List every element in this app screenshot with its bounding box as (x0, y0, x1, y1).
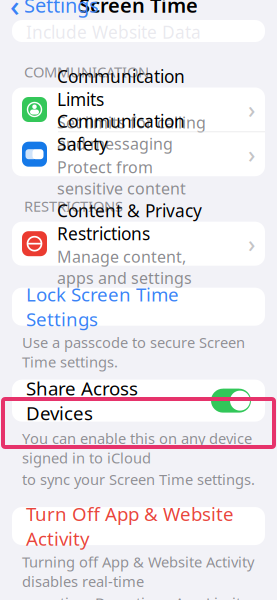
staticText: reporting, Downtime, App Limits and Alwa… (22, 593, 248, 600)
button[interactable]: Share Across Devices (12, 380, 265, 422)
staticText: RESTRICTIONS (24, 196, 123, 216)
staticText: Turn Off App & Website Activity (26, 501, 234, 551)
staticText: Communication Safety (57, 109, 185, 155)
staticText: › (248, 139, 255, 169)
staticText: to sync your Screen Time settings. (22, 470, 255, 489)
staticText: Communication Limits (57, 65, 185, 111)
button[interactable]: Content & Privacy Restrictions (12, 222, 265, 266)
staticText: › (248, 94, 255, 125)
staticText: Turning off App & Website Activity disab… (22, 552, 254, 591)
button[interactable]: Communication Limits (12, 87, 265, 131)
button[interactable]: Turn Off App & Website Activity (12, 507, 265, 545)
button[interactable]: ‹ (0, 0, 99, 28)
staticText: › (248, 229, 255, 259)
staticText: You can enable this on any device signed… (22, 429, 252, 468)
staticText: Settings (24, 0, 99, 18)
button[interactable]: Communication Safety (12, 132, 265, 176)
staticText: Use a passcode to secure Screen Time set… (22, 333, 245, 372)
staticText: Protect from sensitive content (57, 156, 186, 199)
staticText: Screen Time (79, 0, 198, 18)
button[interactable]: Lock Screen Time Settings (12, 288, 265, 326)
staticText: Lock Screen Time Settings (26, 282, 179, 331)
staticText: COMMUNICATION (24, 62, 149, 81)
staticText: Share Across Devices (26, 376, 138, 425)
staticText: Manage content, apps and settings (57, 246, 192, 288)
staticText: ‹ (10, 0, 20, 24)
staticText: Set limits for calling and messaging (57, 112, 206, 154)
staticText: Content & Privacy Restrictions (57, 199, 202, 245)
staticText: Include Website Data (26, 20, 201, 43)
